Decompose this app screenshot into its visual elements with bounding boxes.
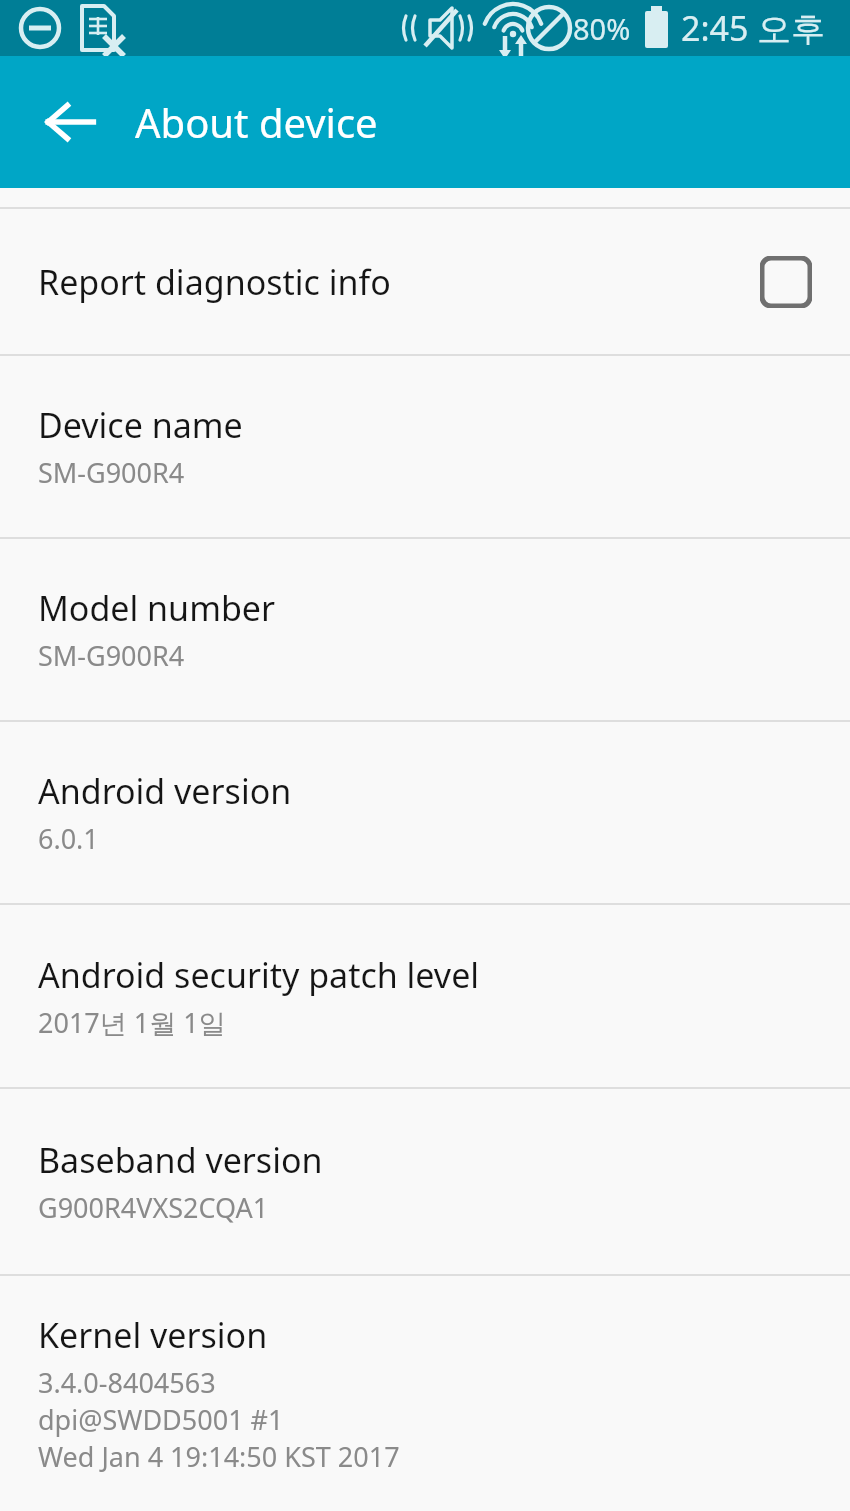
staticText: 2017년 1월 1일 bbox=[38, 1004, 226, 1041]
button[interactable]: Device name bbox=[0, 356, 850, 537]
button[interactable]: Android version bbox=[0, 722, 850, 903]
button[interactable]: Model number bbox=[0, 539, 850, 720]
staticText: Android security patch level bbox=[38, 952, 480, 998]
staticText: SM-G900R4 bbox=[38, 454, 185, 491]
button[interactable]: Android security patch level bbox=[0, 905, 850, 1087]
staticText: Kernel version bbox=[38, 1312, 268, 1358]
staticText: Device name bbox=[38, 402, 243, 448]
staticText: 80% bbox=[573, 9, 631, 48]
staticText: SM-G900R4 bbox=[38, 637, 185, 674]
staticText: 3.4.0-8404563 bbox=[38, 1364, 216, 1401]
staticText: Baseband version bbox=[38, 1137, 323, 1183]
staticText: About device bbox=[135, 95, 378, 149]
staticText: Android version bbox=[38, 768, 292, 814]
staticText: 2:45 오후 bbox=[681, 5, 826, 51]
staticText: Report diagnostic info bbox=[38, 259, 391, 305]
staticText: dpi@SWDD5001 #1 bbox=[38, 1401, 284, 1438]
staticText: Wed Jan 4 19:14:50 KST 2017 bbox=[38, 1438, 400, 1475]
staticText: G900R4VXS2CQA1 bbox=[38, 1189, 269, 1226]
staticText: Model number bbox=[38, 585, 276, 631]
button[interactable]: Kernel version bbox=[0, 1276, 850, 1511]
button[interactable]: Report diagnostic info checkbox bbox=[760, 256, 812, 308]
staticText: 6.0.1 bbox=[38, 820, 99, 857]
button[interactable]: Back bbox=[30, 82, 110, 162]
button[interactable]: Report diagnostic info bbox=[0, 209, 850, 354]
button[interactable]: Baseband version bbox=[0, 1089, 850, 1274]
